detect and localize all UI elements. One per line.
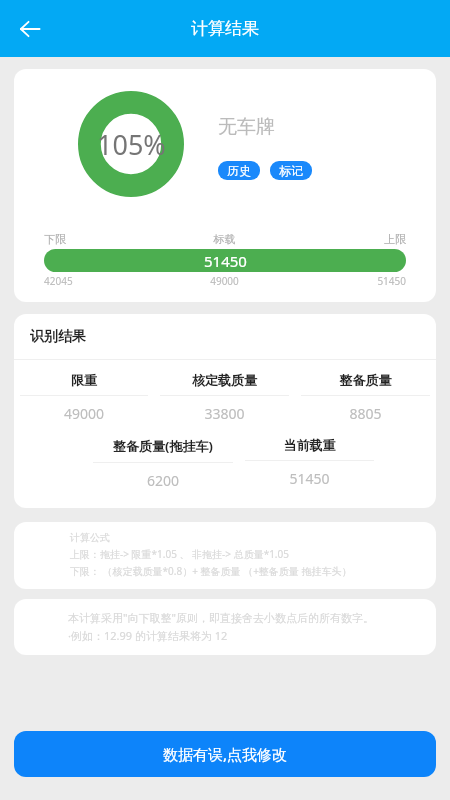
button[interactable]: Back xyxy=(8,7,52,51)
button[interactable]: 历史 xyxy=(218,161,260,180)
staticText: 标载 xyxy=(164,232,285,246)
staticText: 8805 xyxy=(301,404,430,423)
staticText: 限重 xyxy=(20,372,148,388)
staticText: 下限 xyxy=(44,232,164,246)
staticText: 数据有误,点我修改 xyxy=(163,744,288,764)
staticText: 标记 xyxy=(279,163,303,178)
staticText: 历史 xyxy=(227,163,251,178)
staticText: 当前载重 xyxy=(245,437,374,453)
staticText: 上限 xyxy=(285,232,406,246)
button[interactable]: 标记 xyxy=(270,161,312,180)
staticText: 整备质量 xyxy=(301,372,430,388)
staticText: 49000 xyxy=(164,274,285,288)
staticText: 下限： （核定载质量*0.8）+ 整备质量 （+整备质量 拖挂车头） xyxy=(70,564,352,578)
staticText: 计算公式 xyxy=(70,531,110,544)
button[interactable]: 数据有误,点我修改 xyxy=(14,731,436,777)
staticText: 计算结果 xyxy=(191,18,259,39)
staticText: 105% xyxy=(97,126,166,163)
staticText: ·例如：12.99 的计算结果将为 12 xyxy=(68,628,228,643)
staticText: 核定载质量 xyxy=(160,372,289,388)
staticText: 33800 xyxy=(160,404,289,423)
staticText: 6200 xyxy=(93,471,233,490)
staticText: 本计算采用"向下取整"原则，即直接舍去小数点后的所有数字。 xyxy=(68,610,374,625)
staticText: 51450 xyxy=(285,274,406,288)
staticText: 识别结果 xyxy=(30,328,86,346)
staticText: 51450 xyxy=(204,251,247,271)
staticText: 上限：拖挂-> 限重*1.05 、 非拖挂-> 总质量*1.05 xyxy=(70,547,289,561)
staticText: 42045 xyxy=(44,274,164,288)
staticText: 51450 xyxy=(245,469,374,488)
staticText: 无车牌 xyxy=(218,115,275,139)
staticText: 49000 xyxy=(20,404,148,423)
staticText: 整备质量(拖挂车) xyxy=(93,437,233,455)
